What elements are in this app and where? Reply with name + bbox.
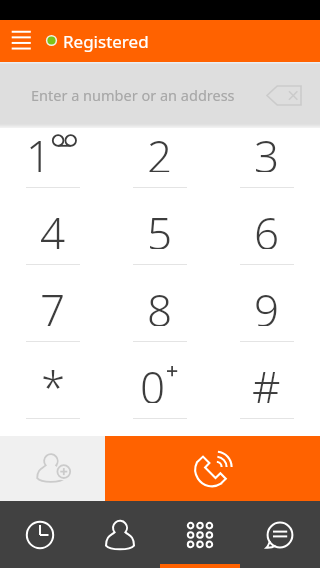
button[interactable]: 9: [213, 282, 320, 359]
button[interactable]: Enter a number or an address: [0, 62, 320, 128]
staticText: 2: [147, 126, 173, 172]
staticText: 6: [254, 203, 280, 249]
staticText: 1: [26, 126, 52, 172]
button[interactable]: Call: [105, 436, 320, 501]
staticText: 8: [147, 280, 173, 326]
button[interactable]: 0: [106, 359, 213, 436]
button[interactable]: Add contact: [0, 436, 105, 501]
staticText: *: [41, 357, 66, 403]
button[interactable]: Recents: [0, 501, 80, 568]
staticText: 0: [140, 357, 166, 403]
button[interactable]: 1: [0, 128, 106, 205]
staticText: 4: [40, 203, 66, 249]
staticText: 5: [147, 203, 173, 249]
button[interactable]: 4: [0, 205, 106, 282]
staticText: 3: [254, 126, 280, 172]
button[interactable]: 3: [213, 128, 320, 205]
staticText: #: [252, 357, 281, 403]
button[interactable]: 7: [0, 282, 106, 359]
staticText: 7: [40, 280, 66, 326]
button[interactable]: *: [0, 359, 106, 436]
button[interactable]: Messages: [240, 501, 320, 568]
button[interactable]: 8: [106, 282, 213, 359]
button[interactable]: 6: [213, 205, 320, 282]
button[interactable]: 5: [106, 205, 213, 282]
staticText: 9: [254, 280, 280, 326]
button[interactable]: 2: [106, 128, 213, 205]
button[interactable]: Keypad: [160, 501, 240, 568]
button[interactable]: #: [213, 359, 320, 436]
button[interactable]: Menu: [4, 24, 38, 58]
staticText: Registered: [63, 30, 149, 53]
button[interactable]: Contacts: [80, 501, 160, 568]
button[interactable]: Backspace: [262, 73, 306, 117]
staticText: Enter a number or an address: [31, 85, 235, 105]
